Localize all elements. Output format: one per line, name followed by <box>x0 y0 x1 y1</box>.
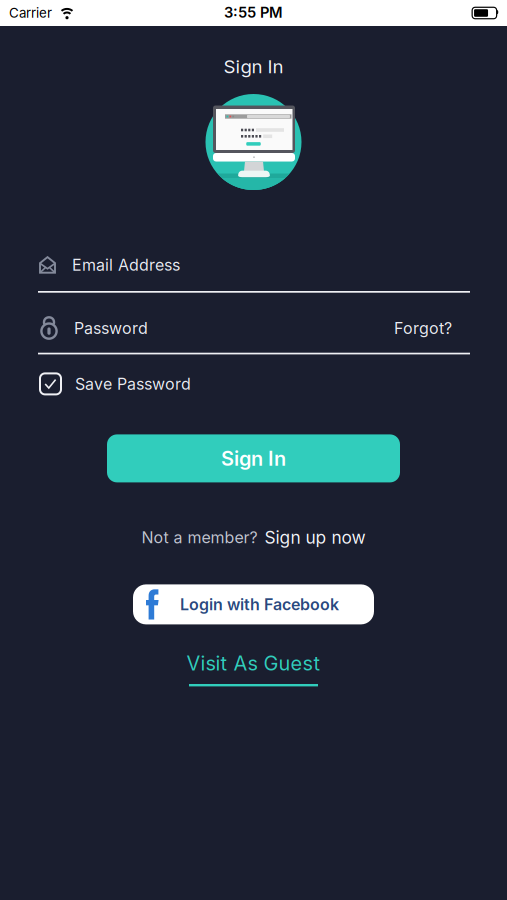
staticText: Visit As Guest <box>186 651 320 675</box>
staticText: Not a member? <box>141 528 257 547</box>
button[interactable]: Sign In <box>107 434 400 482</box>
staticText: Forgot? <box>394 319 452 338</box>
button[interactable]: Forgot? <box>394 319 452 338</box>
staticText: Email Address <box>72 256 180 274</box>
staticText: Sign In <box>221 447 286 470</box>
staticText: Carrier <box>9 5 52 21</box>
staticText: Password <box>74 319 148 338</box>
button[interactable]: Visit As Guest <box>186 651 320 686</box>
staticText: Sign In <box>223 55 283 77</box>
button[interactable]: Sign up now <box>264 527 365 548</box>
button[interactable]: Login with Facebook <box>133 584 374 624</box>
staticText: Sign up now <box>264 527 365 548</box>
staticText: Login with Facebook <box>180 595 339 614</box>
staticText: 3:55 PM <box>224 4 283 21</box>
staticText: Save Password <box>75 374 191 393</box>
button[interactable]: Save Password <box>40 373 191 394</box>
